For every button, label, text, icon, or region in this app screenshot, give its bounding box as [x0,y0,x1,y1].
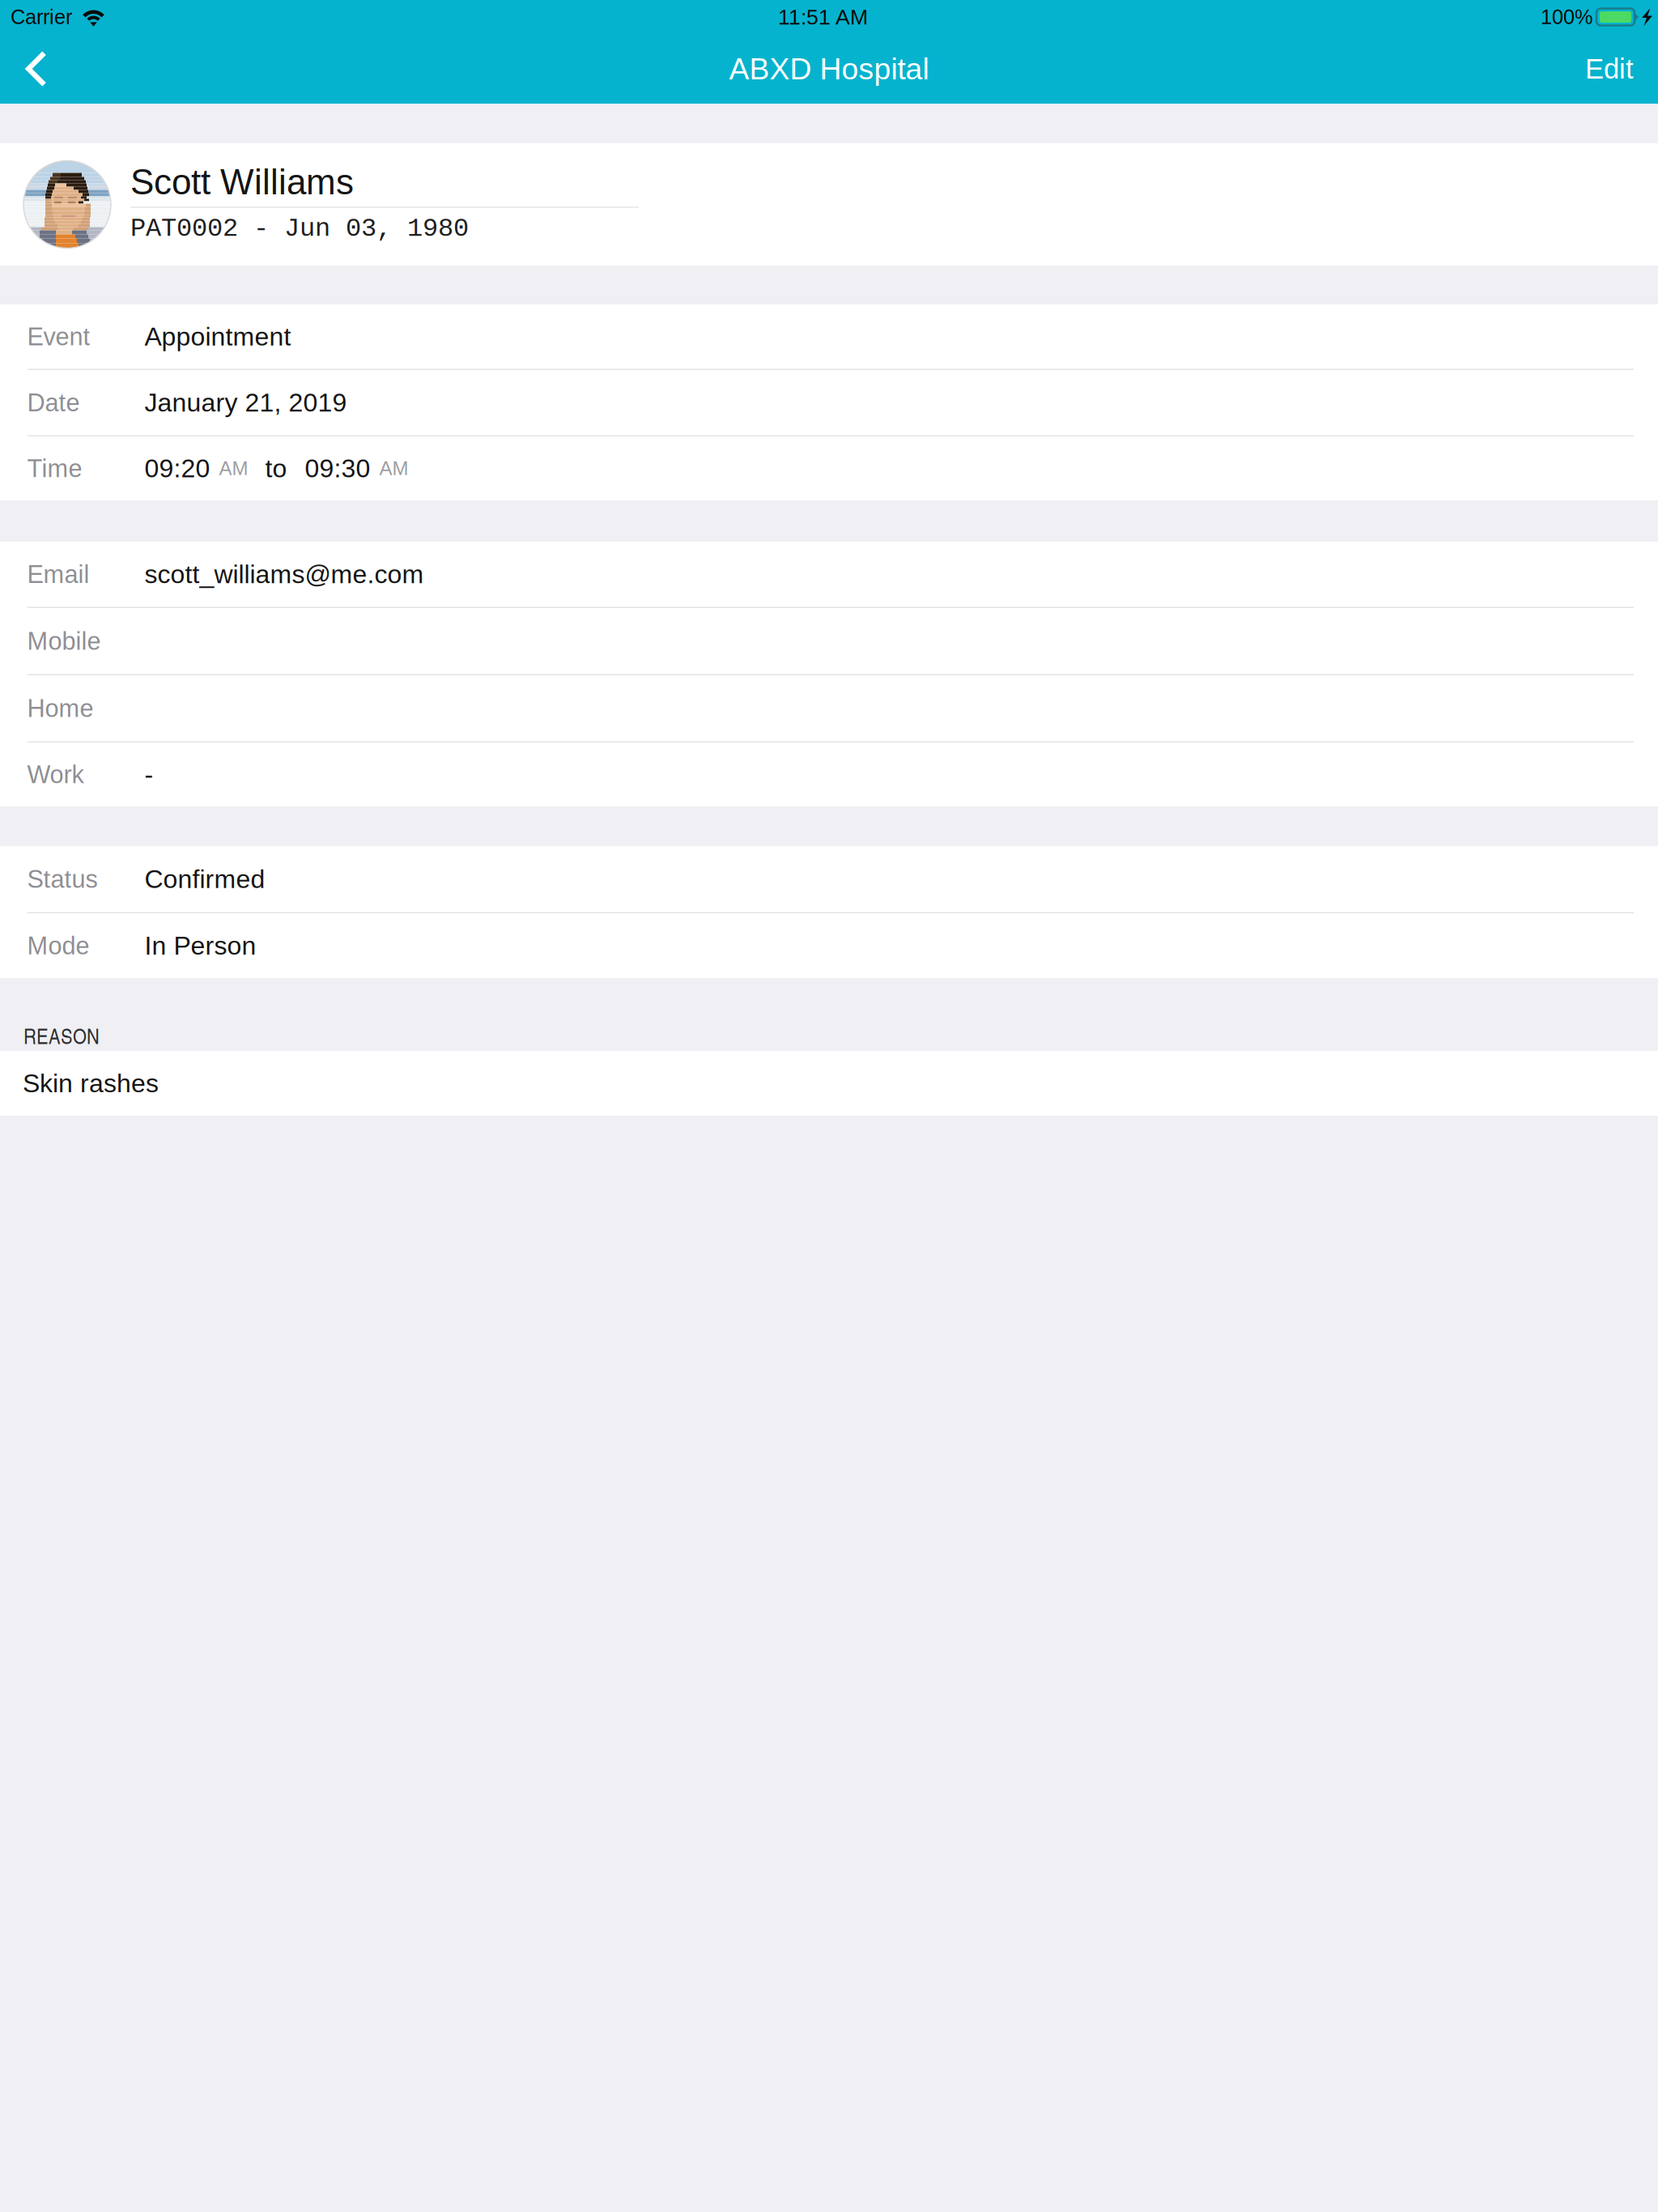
staticText: Scott Williams [130,162,354,202]
button[interactable]: Skin rashes [0,1051,1658,1116]
button[interactable]: Event [0,304,1658,370]
staticText: PAT0002 - Jun 03, 1980 [130,214,469,244]
staticText: Carrier [11,6,72,28]
button[interactable]: Work [0,742,1658,806]
staticText: In Person [145,931,256,960]
staticText: Event [27,323,90,351]
staticText: Date [27,389,80,416]
staticText: January 21, 2019 [145,388,347,417]
staticText: Appointment [145,322,291,351]
staticText: 11:51 AM [778,5,868,29]
staticText: AM [379,458,408,479]
button[interactable]: Date [0,370,1658,436]
staticText: Work [27,761,84,788]
button[interactable]: Mobile [0,608,1658,675]
button[interactable]: Home [0,675,1658,742]
staticText: ABXD Hospital [729,52,929,86]
staticText: Mode [27,932,89,960]
button[interactable]: Email [0,542,1658,608]
button[interactable]: Status [0,846,1658,913]
staticText: Home [27,694,94,722]
staticText: Confirmed [145,865,265,894]
staticText: Skin rashes [23,1069,159,1098]
staticText: AM [219,458,248,479]
staticText: to [265,454,287,483]
staticText: Time [27,455,82,482]
staticText: Mobile [27,627,101,655]
button[interactable]: Mode [0,913,1658,978]
button[interactable]: Back [10,34,63,104]
staticText: Email [27,560,89,588]
staticText: Status [27,865,98,893]
staticText: scott_williams@me.com [145,560,424,589]
staticText: REASON [23,1020,100,1050]
button[interactable]: Time [0,436,1658,500]
staticText: 09:20 [145,454,210,483]
staticText: 09:30 [305,454,370,483]
staticText: Edit [1585,53,1634,84]
staticText: 100% [1541,6,1593,28]
button[interactable]: Edit [1572,34,1647,104]
staticText: - [145,760,153,789]
